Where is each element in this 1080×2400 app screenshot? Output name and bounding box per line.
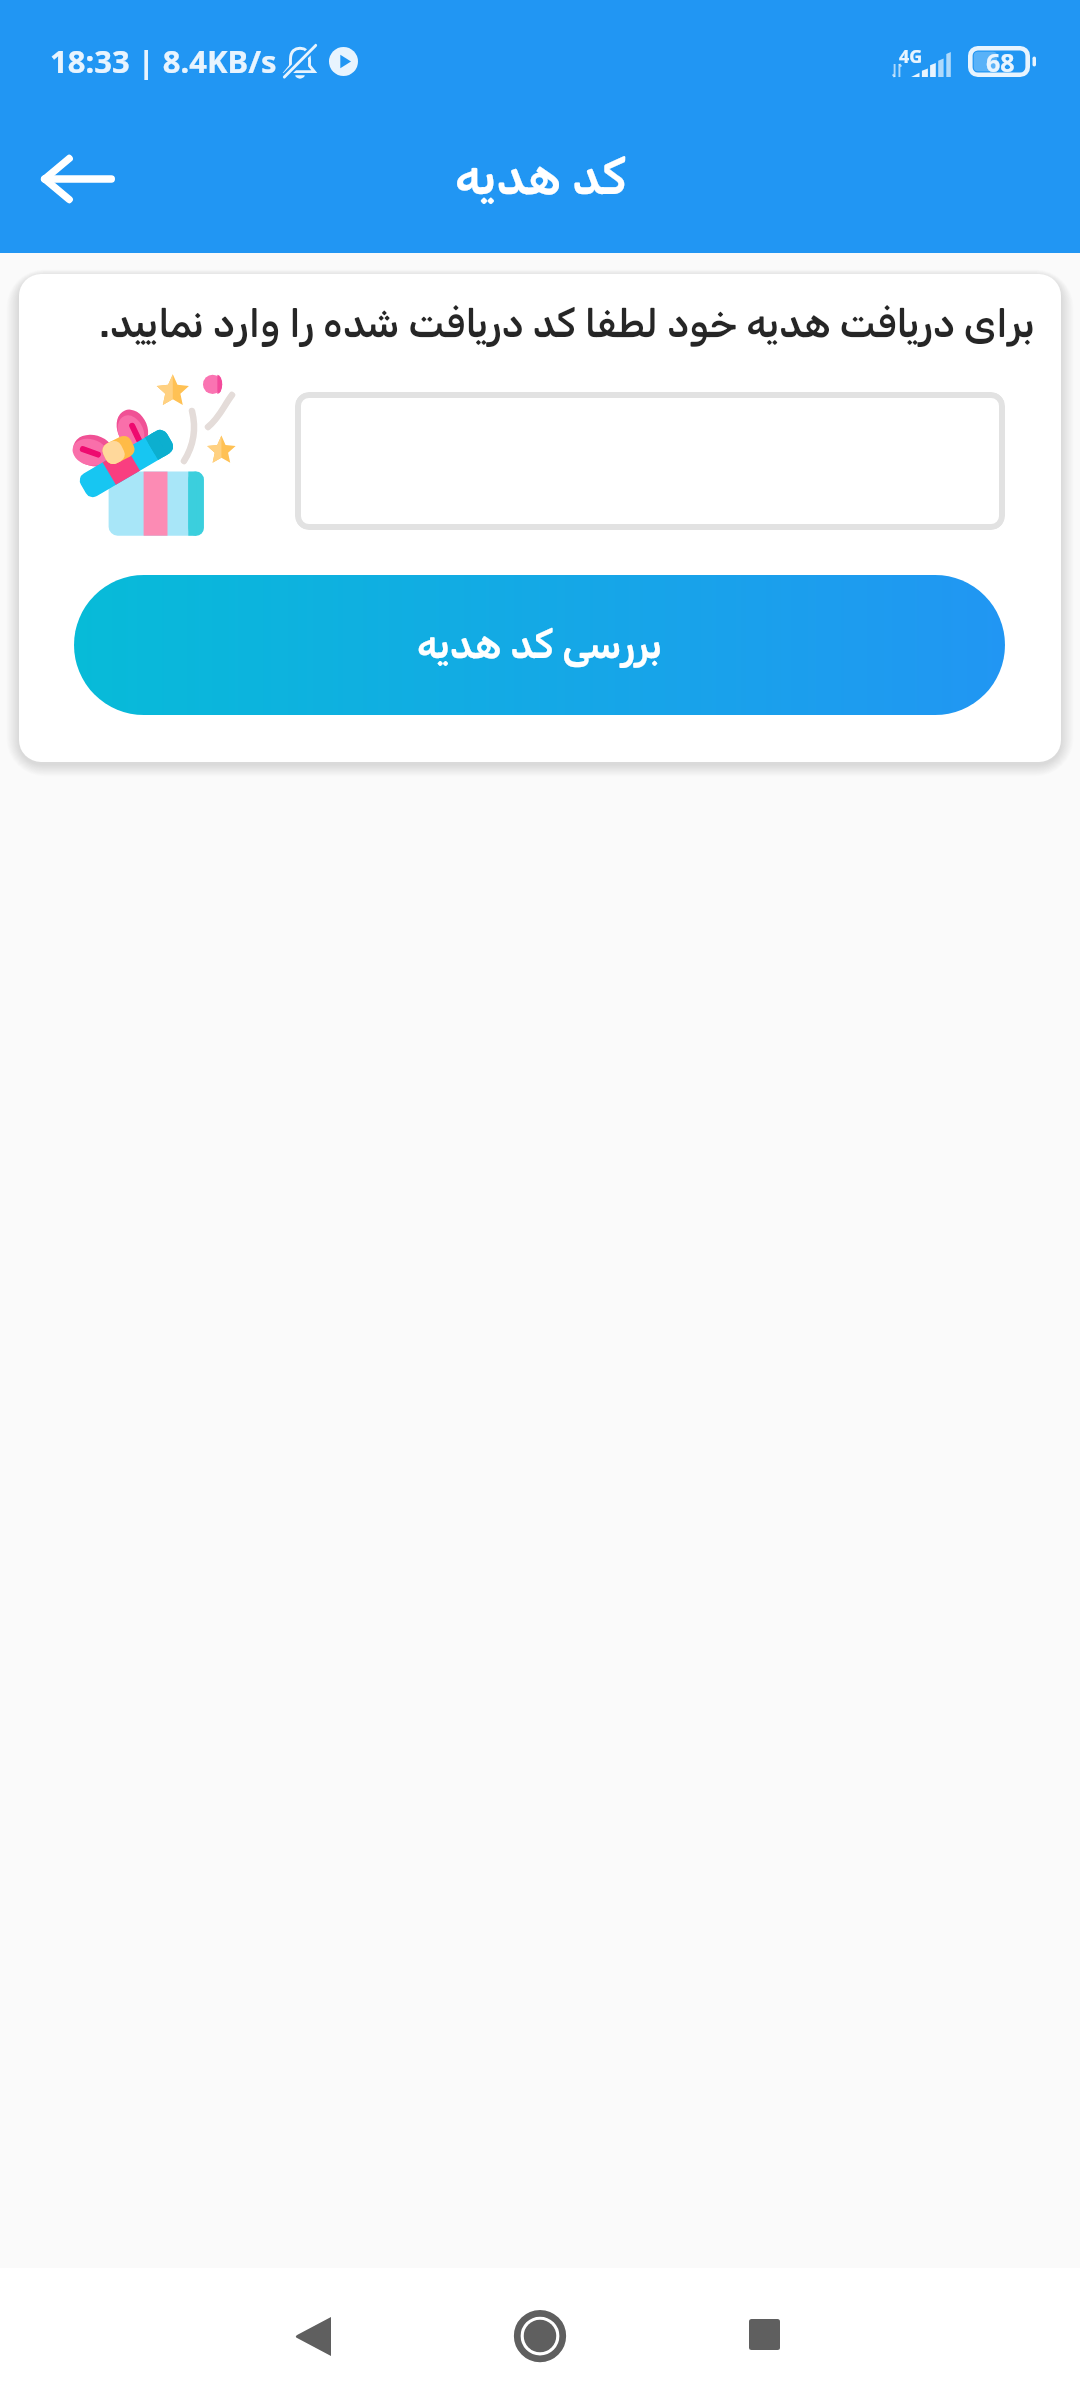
- button[interactable]: بررسی کد هدیه: [74, 575, 1005, 715]
- button[interactable]: Back: [27, 128, 129, 230]
- staticText: 18:33 | 8.4KB/s: [50, 40, 277, 82]
- staticText: کد هدیه: [455, 148, 627, 206]
- staticText: برای دریافت هدیه خود لطفا کد دریافت شده …: [46, 301, 1061, 347]
- button[interactable]: Home: [480, 2276, 600, 2396]
- button[interactable]: Back: [252, 2276, 372, 2396]
- button[interactable]: Recent apps: [704, 2274, 824, 2394]
- button[interactable]: [295, 392, 1005, 530]
- staticText: 68: [986, 45, 1015, 76]
- staticText: بررسی کد هدیه: [417, 622, 662, 668]
- staticText: 4G: [899, 44, 923, 69]
